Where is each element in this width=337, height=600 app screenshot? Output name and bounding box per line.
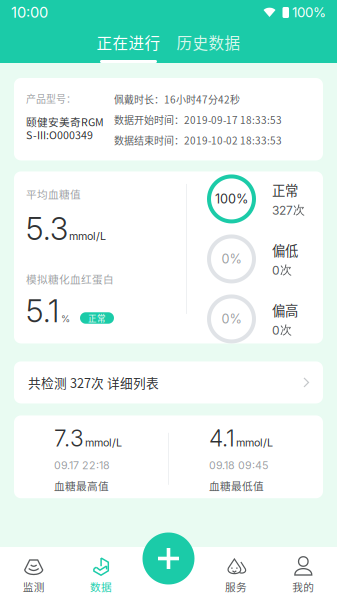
staticText: 正在进行 bbox=[96, 31, 160, 54]
button[interactable]: 正在进行 bbox=[96, 25, 160, 63]
staticText: mmol/L bbox=[236, 436, 273, 449]
staticText: 09.18 09:45 bbox=[209, 459, 268, 472]
staticText: 偏高 bbox=[272, 300, 298, 319]
staticText: 正常 bbox=[88, 312, 106, 324]
staticText: 327次 bbox=[272, 202, 305, 218]
staticText: 7.3 bbox=[54, 424, 84, 452]
staticText: 0次 bbox=[272, 322, 292, 338]
staticText: 共检测 327次 详细列表 bbox=[28, 373, 159, 392]
staticText: 血糖最高值 bbox=[54, 478, 109, 493]
staticText: 监测 bbox=[23, 579, 45, 594]
staticText: 5.3 bbox=[26, 210, 68, 247]
staticText: 正常 bbox=[272, 180, 298, 199]
button[interactable]: 服务 bbox=[202, 547, 270, 600]
staticText: 100% bbox=[215, 191, 248, 207]
staticText: 09.17 22:18 bbox=[54, 459, 110, 472]
button[interactable]: 数据 bbox=[67, 547, 135, 600]
staticText: 历史数据 bbox=[176, 31, 240, 54]
staticText: 100% bbox=[292, 4, 326, 20]
staticText: S-III:O000349 bbox=[26, 127, 93, 142]
staticText: 4.1 bbox=[209, 424, 235, 452]
staticText: % bbox=[61, 313, 70, 324]
staticText: 数据开始时间：2019-09-17 18:33:53 bbox=[114, 112, 282, 127]
staticText: mmol/L bbox=[85, 436, 122, 449]
button[interactable]: 历史数据 bbox=[176, 25, 240, 63]
staticText: 数据 bbox=[90, 579, 112, 594]
staticText: 血糖最低值 bbox=[209, 478, 264, 493]
staticText: 数据结束时间：2019-10-02 18:33:53 bbox=[114, 133, 282, 147]
button[interactable]: 添加 bbox=[142, 532, 194, 584]
staticText: 佩戴时长：16小时47分42秒 bbox=[114, 92, 240, 106]
button[interactable]: 我的 bbox=[270, 547, 337, 600]
staticText: 10:00 bbox=[11, 4, 48, 21]
staticText: 0% bbox=[221, 251, 241, 267]
staticText: 我的 bbox=[292, 579, 314, 594]
staticText: mmol/L bbox=[69, 230, 106, 243]
staticText: 偏低 bbox=[272, 240, 298, 259]
button[interactable]: 监测 bbox=[0, 547, 67, 600]
staticText: 平均血糖值 bbox=[26, 186, 81, 201]
staticText: 产品型号： bbox=[26, 91, 76, 106]
staticText: 模拟糖化血红蛋白 bbox=[26, 271, 114, 287]
staticText: 0% bbox=[221, 311, 241, 327]
staticText: 服务 bbox=[225, 579, 247, 594]
staticText: 5.1 bbox=[26, 292, 59, 329]
button[interactable]: 共检测 327次 详细列表 bbox=[14, 361, 323, 403]
staticText: 颐健安美奇RGM bbox=[26, 114, 104, 129]
staticText: 0次 bbox=[272, 262, 292, 278]
